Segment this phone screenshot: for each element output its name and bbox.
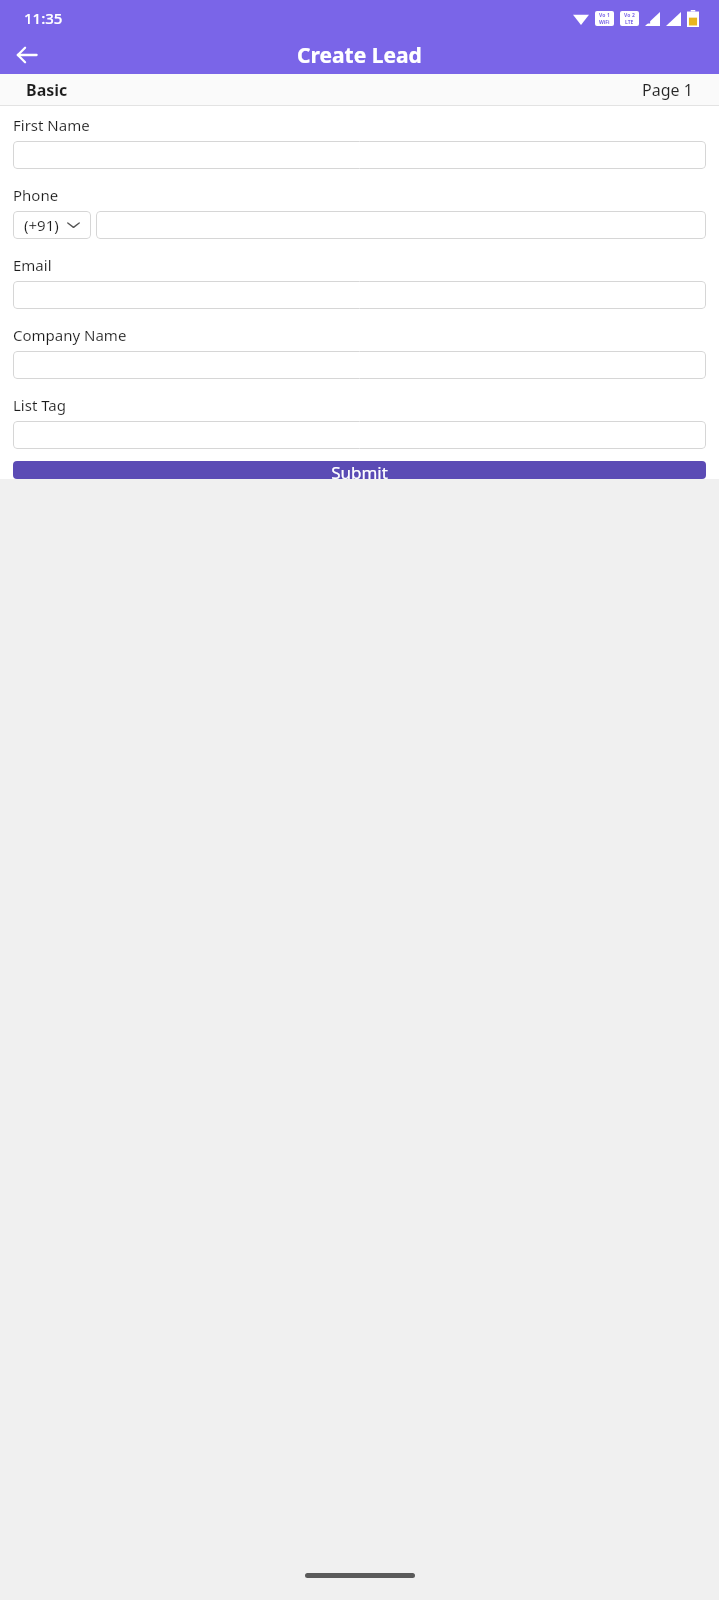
staticText: (+91) xyxy=(24,215,59,235)
staticText: Phone xyxy=(13,185,59,205)
staticText: Basic xyxy=(26,79,68,101)
button[interactable]: Back xyxy=(8,36,46,74)
staticText: Company Name xyxy=(13,325,127,345)
staticText: 11:35 xyxy=(24,8,63,28)
staticText: 1 xyxy=(607,12,610,19)
staticText: Email xyxy=(13,255,52,275)
button[interactable]: Submit xyxy=(13,461,706,479)
button[interactable]: (+91) xyxy=(13,211,91,239)
staticText: LTE xyxy=(625,19,634,26)
staticText: First Name xyxy=(13,115,90,135)
button[interactable]: Text field xyxy=(13,351,706,379)
staticText: Create Lead xyxy=(297,41,422,70)
staticText: Submit xyxy=(331,461,388,479)
staticText: Page 1 xyxy=(642,79,693,101)
button[interactable]: Text field xyxy=(96,211,706,239)
staticText: List Tag xyxy=(13,395,67,415)
staticText: 2 xyxy=(632,12,635,19)
button[interactable]: Text field xyxy=(13,141,706,169)
button[interactable]: Text field xyxy=(13,281,706,309)
staticText: WiFi xyxy=(599,19,610,26)
button[interactable]: Text field xyxy=(13,421,706,449)
staticText: Vo xyxy=(624,12,631,19)
staticText: Vo xyxy=(599,12,606,19)
